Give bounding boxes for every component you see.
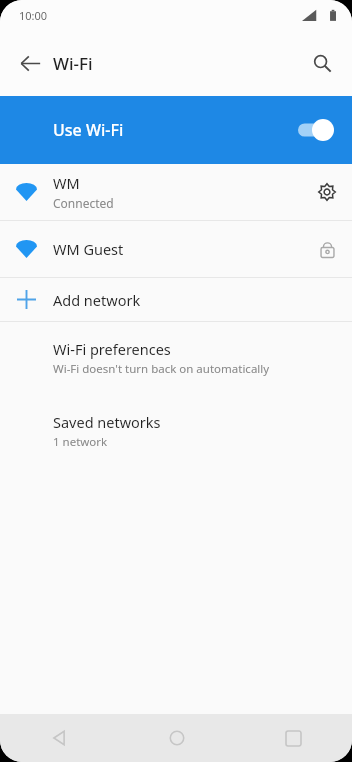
staticText: Wi-Fi doesn't turn back on automatically	[53, 361, 270, 377]
staticText: WM	[53, 173, 80, 193]
button[interactable]: Back	[8, 41, 52, 85]
staticText: Connected	[53, 195, 114, 211]
button[interactable]: Secured network	[302, 221, 352, 277]
staticText: Add network	[53, 290, 141, 310]
button[interactable]: Saved networks	[0, 403, 352, 459]
button[interactable]: Wi-Fi preferences	[0, 330, 352, 386]
button[interactable]: WM Guest	[0, 221, 352, 277]
staticText: 10:00	[19, 8, 48, 23]
button[interactable]: Home	[118, 714, 235, 762]
button[interactable]: WM	[0, 164, 352, 220]
staticText: WM Guest	[53, 239, 124, 259]
staticText: 1 network	[53, 434, 108, 450]
button[interactable]: Search	[300, 41, 344, 85]
button[interactable]: Network settings	[302, 164, 352, 220]
staticText: Wi-Fi preferences	[53, 339, 171, 359]
button[interactable]: Back	[0, 714, 118, 762]
staticText: Wi-Fi	[53, 52, 93, 75]
button[interactable]: Use Wi-Fi	[0, 96, 352, 164]
button[interactable]: Add network	[0, 278, 352, 321]
staticText: Saved networks	[53, 412, 161, 432]
button[interactable]: Recent apps	[235, 714, 352, 762]
staticText: Use Wi-Fi	[53, 119, 298, 141]
